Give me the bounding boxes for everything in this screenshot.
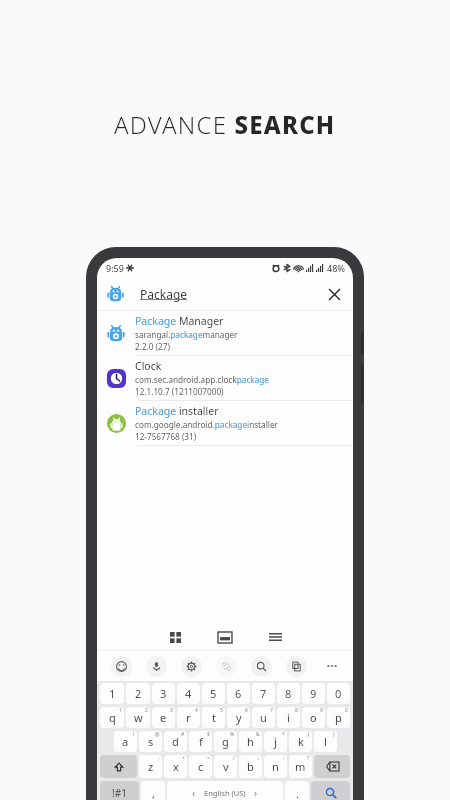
button[interactable]: w: [126, 707, 150, 728]
button[interactable]: s: [139, 731, 162, 752]
button[interactable]: 5: [202, 683, 225, 704]
staticText: b: [247, 759, 254, 774]
staticText: t: [212, 710, 216, 725]
staticText: i: [287, 710, 290, 725]
button[interactable]: Package: [97, 277, 353, 310]
button[interactable]: .: [285, 781, 309, 800]
button[interactable]: m: [289, 755, 312, 778]
button[interactable]: 6: [227, 683, 250, 704]
button[interactable]: List view: [259, 624, 291, 650]
button[interactable]: i: [277, 707, 300, 728]
staticText: :: [283, 755, 285, 762]
staticText: u: [260, 710, 267, 725]
button[interactable]: Keyboard settings: [174, 656, 209, 677]
button[interactable]: 0: [327, 683, 350, 704]
staticText: Package Manager: [135, 314, 224, 328]
staticText: n: [272, 759, 279, 774]
button[interactable]: u: [252, 707, 275, 728]
staticText: /: [233, 755, 235, 762]
staticText: c: [198, 759, 204, 774]
button[interactable]: Shift: [100, 755, 137, 778]
button[interactable]: y: [227, 707, 250, 728]
staticText: Package installer: [135, 404, 219, 418]
button[interactable]: Clock: [97, 356, 353, 400]
button[interactable]: g: [214, 731, 237, 752]
button[interactable]: Translate: [209, 656, 244, 677]
button[interactable]: b: [239, 755, 262, 778]
staticText: r: [186, 710, 191, 725]
button[interactable]: Search: [311, 781, 350, 800]
button[interactable]: 8: [277, 683, 300, 704]
staticText: 6: [235, 686, 242, 701]
button[interactable]: t: [202, 707, 225, 728]
staticText: o: [310, 710, 317, 725]
button[interactable]: Card view: [209, 624, 241, 650]
staticText: 3: [170, 707, 173, 714]
button[interactable]: Grid view: [159, 624, 191, 650]
button[interactable]: Package Manager: [97, 311, 353, 355]
staticText: 8: [295, 707, 298, 714]
staticText: f: [199, 734, 203, 749]
staticText: s: [148, 734, 154, 749]
button[interactable]: z: [139, 755, 162, 778]
button[interactable]: 2: [126, 683, 150, 704]
button[interactable]: a: [114, 731, 137, 752]
button[interactable]: r: [177, 707, 200, 728]
staticText: 5: [210, 686, 217, 701]
staticText: 7: [270, 707, 273, 714]
staticText: ;: [258, 755, 260, 762]
staticText: 1: [109, 686, 116, 701]
button[interactable]: n: [264, 755, 287, 778]
button[interactable]: Backspace: [314, 755, 350, 778]
staticText: ?: [307, 755, 310, 762]
button[interactable]: ,: [141, 781, 165, 800]
staticText: 4: [185, 686, 192, 701]
button[interactable]: x: [164, 755, 187, 778]
staticText: q: [109, 710, 116, 725]
button[interactable]: Search: [244, 656, 279, 677]
staticText: e: [160, 710, 167, 725]
button[interactable]: h: [239, 731, 262, 752]
button[interactable]: Clipboard: [279, 656, 314, 677]
staticText: 12-7567768 (31): [135, 431, 197, 442]
button[interactable]: ‹: [167, 781, 283, 800]
staticText: =: [207, 755, 210, 762]
staticText: 6: [245, 707, 248, 714]
button[interactable]: f: [189, 731, 212, 752]
button[interactable]: v: [214, 755, 237, 778]
staticText: 4: [195, 707, 198, 714]
button[interactable]: 7: [252, 683, 275, 704]
button[interactable]: q: [100, 707, 124, 728]
staticText: j: [274, 734, 277, 749]
staticText: ,: [152, 786, 155, 800]
staticText: !#1: [112, 786, 127, 800]
button[interactable]: e: [152, 707, 175, 728]
staticText: 1: [119, 707, 122, 714]
button[interactable]: Close: [321, 281, 347, 307]
staticText: 9: [310, 686, 317, 701]
staticText: .: [296, 786, 299, 800]
staticText: Package: [140, 286, 188, 302]
button[interactable]: d: [164, 731, 187, 752]
button[interactable]: o: [302, 707, 325, 728]
staticText: 2: [135, 686, 142, 701]
staticText: ‹: [192, 786, 196, 800]
button[interactable]: l: [314, 731, 337, 752]
staticText: Clock: [135, 359, 162, 373]
button[interactable]: k: [289, 731, 312, 752]
button[interactable]: j: [264, 731, 287, 752]
staticText: ): [333, 731, 335, 738]
button[interactable]: 9: [302, 683, 325, 704]
button[interactable]: Voice input: [139, 656, 174, 677]
button[interactable]: 3: [152, 683, 175, 704]
staticText: ADVANCE SEARCH: [114, 108, 336, 141]
button[interactable]: Emoji: [103, 656, 139, 677]
button[interactable]: 1: [100, 683, 124, 704]
button[interactable]: p: [327, 707, 350, 728]
staticText: (: [308, 731, 310, 738]
button[interactable]: 4: [177, 683, 200, 704]
button[interactable]: c: [189, 755, 212, 778]
button[interactable]: More: [314, 664, 349, 668]
button[interactable]: Symbols: [100, 781, 139, 800]
button[interactable]: Package installer: [97, 401, 353, 445]
